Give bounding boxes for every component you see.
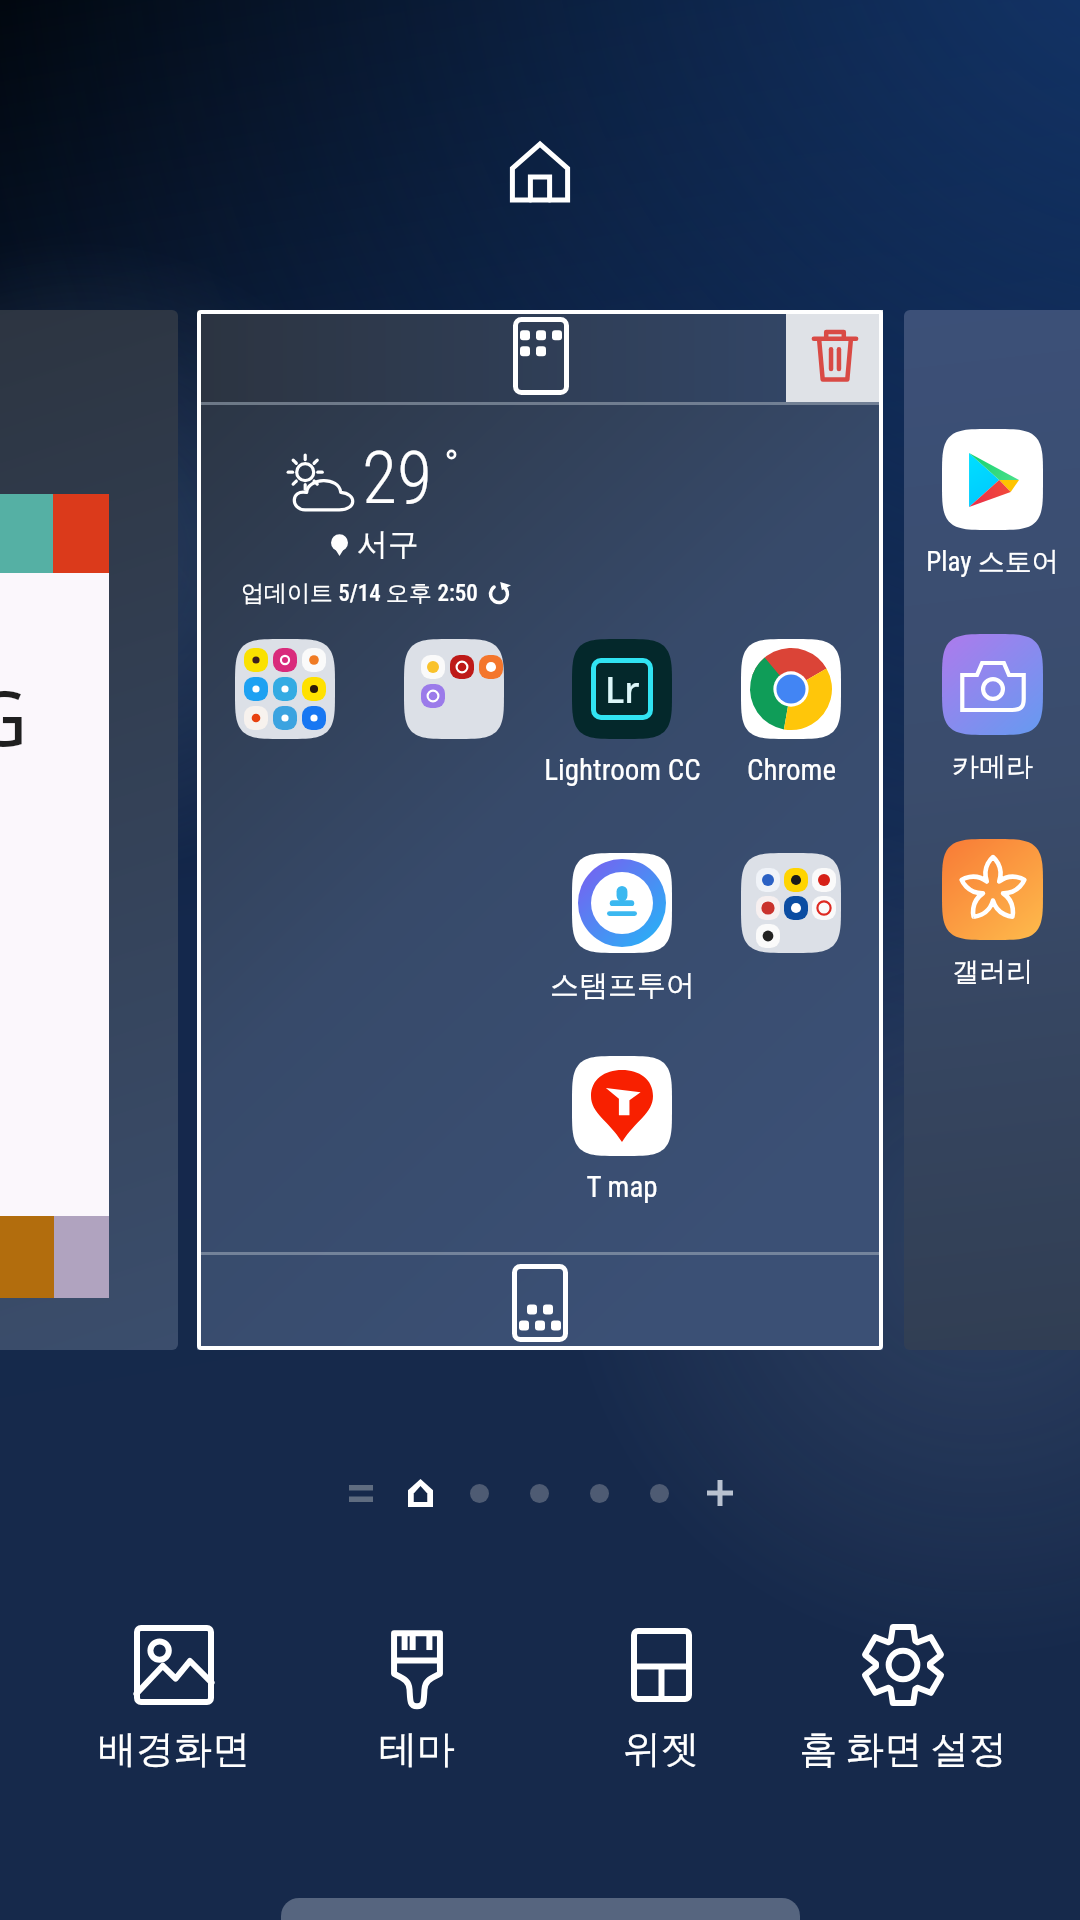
button[interactable]: Main home page: [391, 1464, 449, 1522]
button[interactable]: Page layout: [197, 310, 786, 402]
button[interactable]: 위젯: [541, 1605, 781, 1789]
button[interactable]: [344, 639, 564, 739]
staticText: 갤러리: [952, 955, 1033, 989]
staticText: Lightroom CC: [544, 753, 701, 787]
staticText: 업데이트 5/14 오후 2:50: [241, 579, 478, 608]
staticText: 스탬프투어: [550, 967, 695, 1004]
button[interactable]: Page: [510, 1464, 568, 1522]
button[interactable]: Home screen: [510, 141, 570, 203]
button[interactable]: T map: [512, 1056, 732, 1204]
staticText: 배경화면: [98, 1725, 250, 1773]
staticText: Play 스토어: [926, 545, 1059, 579]
staticText: 서구: [357, 525, 419, 564]
button[interactable]: Page: [630, 1464, 688, 1522]
button[interactable]: 배경화면: [54, 1605, 294, 1789]
staticText: 29: [362, 436, 432, 520]
staticText: 테마: [379, 1725, 455, 1773]
staticText: Lr: [605, 665, 640, 714]
button[interactable]: Chrome: [681, 639, 901, 787]
button[interactable]: G: [0, 310, 178, 1350]
button[interactable]: Play 스토어: [904, 310, 1080, 1350]
staticText: G: [0, 665, 28, 769]
button[interactable]: 테마: [297, 1605, 537, 1789]
button[interactable]: Add page: [691, 1464, 749, 1522]
staticText: T map: [586, 1170, 658, 1204]
button[interactable]: 스탬프투어: [512, 853, 732, 1004]
button[interactable]: 홈 화면 설정: [783, 1605, 1023, 1789]
button[interactable]: Page: [450, 1464, 508, 1522]
button[interactable]: Lr: [512, 639, 732, 787]
staticText: Chrome: [747, 753, 836, 787]
button[interactable]: All pages: [332, 1464, 390, 1522]
button[interactable]: [681, 853, 901, 953]
button[interactable]: 갤러리: [904, 839, 1080, 989]
staticText: 카메라: [952, 750, 1033, 784]
staticText: 홈 화면 설정: [799, 1725, 1007, 1773]
button[interactable]: Page layout: [197, 1255, 883, 1350]
other: Page layout: [513, 317, 569, 395]
button[interactable]: [175, 639, 395, 739]
button[interactable]: Page: [570, 1464, 628, 1522]
staticText: 위젯: [623, 1725, 699, 1773]
button[interactable]: Remove page: [786, 310, 883, 402]
button[interactable]: Play 스토어: [904, 429, 1080, 579]
other: Page layout: [512, 1264, 568, 1342]
button[interactable]: 카메라: [904, 634, 1080, 784]
